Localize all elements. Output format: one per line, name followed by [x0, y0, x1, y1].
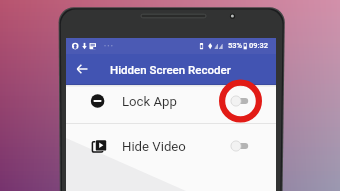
button[interactable]: Toggle Lock App	[228, 93, 254, 109]
button[interactable]: Hide Video	[66, 124, 276, 168]
staticText: Lock App	[122, 94, 177, 109]
staticText: Hidden Screen Recoder	[110, 63, 231, 76]
staticText: 09:32	[249, 41, 269, 50]
button[interactable]: Toggle Hide Video	[228, 138, 254, 154]
staticText: 53%	[228, 41, 243, 50]
button[interactable]: Back	[73, 59, 93, 79]
staticText: Hide Video	[122, 139, 186, 154]
button[interactable]: Lock App	[66, 79, 276, 123]
